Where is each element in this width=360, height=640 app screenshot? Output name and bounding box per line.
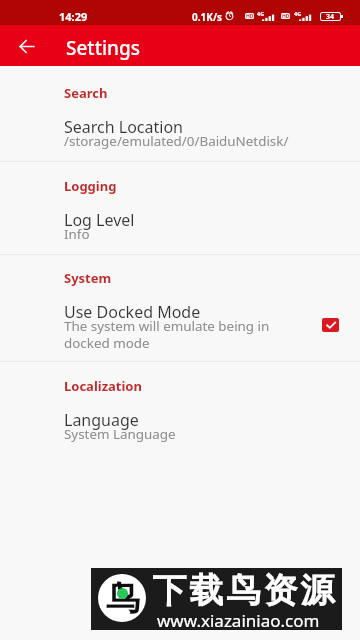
button[interactable]: Use Docked Mode checkbox [322, 318, 339, 332]
staticText: Log Level [64, 209, 135, 231]
staticText: Use Docked Mode [64, 301, 201, 323]
staticText: /storage/emulated/0/BaiduNetdisk/ [64, 132, 354, 150]
staticText: System [64, 269, 112, 287]
staticText: 鸟 [106, 577, 140, 620]
staticText: Language [64, 409, 139, 431]
staticText: The system will emulate being in docked … [64, 317, 276, 351]
button[interactable]: Language [0, 396, 360, 455]
button[interactable]: Use Docked Mode [0, 288, 360, 361]
button[interactable]: Log Level [0, 196, 360, 254]
staticText: Logging [64, 177, 117, 195]
staticText: 0.1K/s [192, 10, 223, 24]
staticText: Info [64, 225, 354, 243]
staticText: System Language [64, 425, 354, 443]
staticText: Settings [66, 35, 140, 61]
button[interactable]: Search Location [0, 103, 360, 161]
staticText: 14:29 [59, 9, 88, 24]
staticText: HD [282, 13, 290, 19]
staticText: Localization [64, 377, 142, 395]
staticText: 34 [326, 12, 335, 21]
button[interactable]: Back [7, 27, 45, 65]
staticText: Search Location [64, 116, 183, 138]
staticText: Search [64, 84, 108, 102]
staticText: HD [246, 13, 254, 19]
staticText: 4G [257, 10, 265, 17]
staticText: www.xiazainiao.com [157, 609, 320, 632]
staticText: 下载鸟资源 [151, 569, 336, 612]
staticText: 4G [294, 10, 302, 17]
